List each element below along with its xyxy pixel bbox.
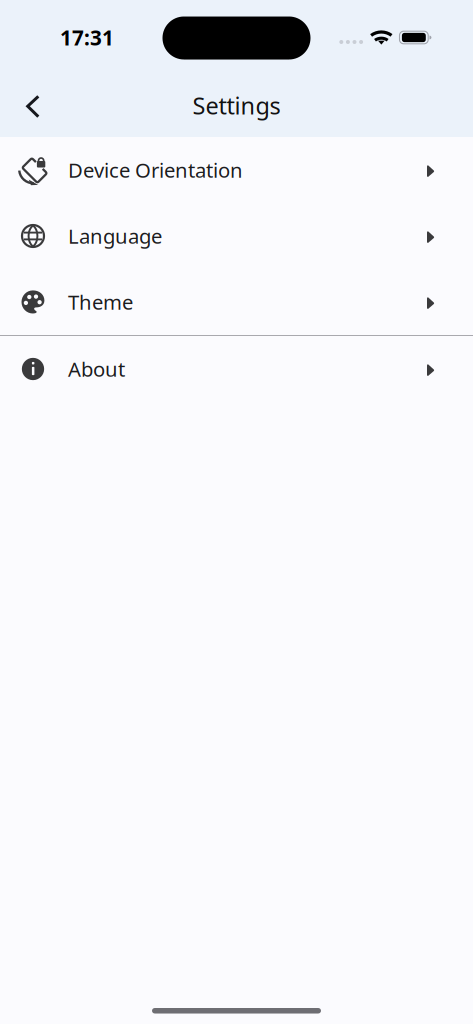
button[interactable]: Back <box>10 83 56 129</box>
button[interactable]: Language <box>0 203 473 269</box>
staticText: Settings <box>192 89 280 121</box>
staticText: Device Orientation <box>68 156 243 184</box>
button[interactable]: Device Orientation <box>0 137 473 203</box>
staticText: 17:31 <box>60 23 114 51</box>
staticText: Theme <box>68 288 133 316</box>
button[interactable]: About <box>0 336 473 402</box>
staticText: About <box>68 355 125 383</box>
staticText: Language <box>68 222 162 250</box>
button[interactable]: Theme <box>0 269 473 335</box>
